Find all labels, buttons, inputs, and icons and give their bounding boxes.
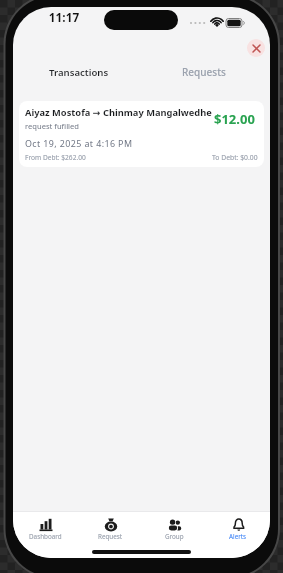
button[interactable]: Request: [78, 518, 142, 548]
staticText: $12.00: [214, 110, 255, 128]
staticText: Request: [98, 532, 123, 541]
button[interactable]: Requests: [141, 61, 266, 83]
staticText: Alerts: [229, 532, 247, 541]
staticText: Transactions: [49, 66, 109, 79]
staticText: Oct 19, 2025 at 4:16 PM: [25, 137, 133, 149]
button[interactable]: [247, 39, 265, 57]
staticText: Aiyaz Mostofa → Chinmay Mangalwedhe: [25, 106, 212, 119]
staticText: To Debt: $0.00: [212, 153, 258, 162]
button[interactable]: Group: [142, 518, 206, 548]
button[interactable]: Alerts: [206, 518, 270, 548]
staticText: From Debt: $262.00: [25, 153, 86, 162]
staticText: Requests: [182, 65, 226, 79]
button[interactable]: Transactions: [17, 61, 141, 83]
button[interactable]: Aiyaz Mostofa → Chinmay Mangalwedhe: [19, 101, 264, 167]
staticText: request fufilled: [25, 121, 80, 131]
staticText: Dashboard: [29, 532, 62, 541]
staticText: 11:17: [36, 9, 92, 25]
button[interactable]: Dashboard: [13, 518, 78, 548]
staticText: Group: [165, 532, 184, 541]
